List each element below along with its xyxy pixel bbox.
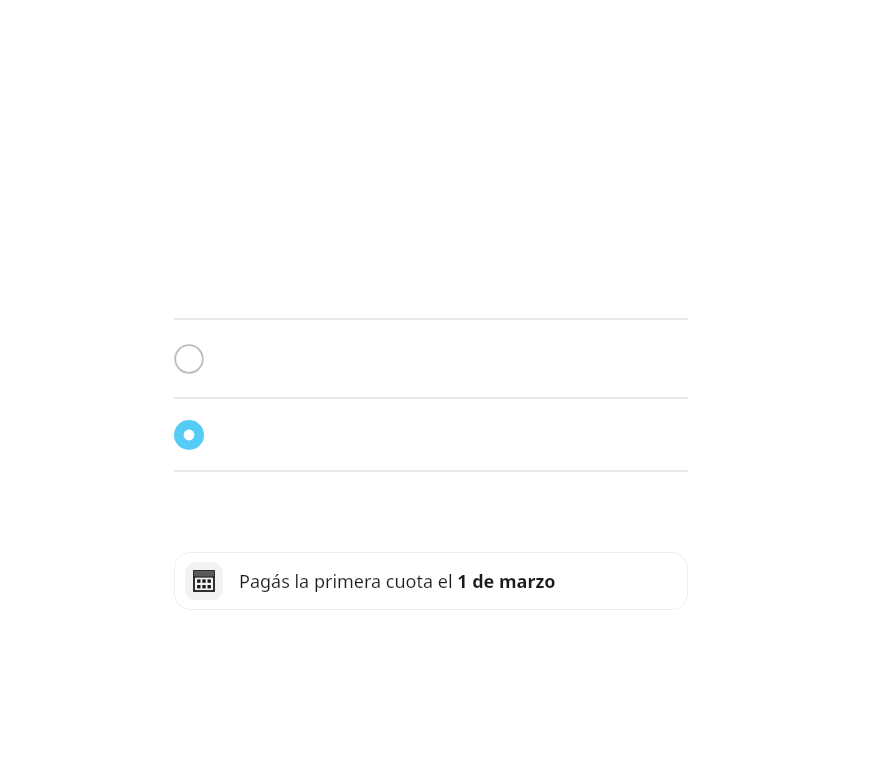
other: Opción seleccionada [174, 420, 204, 450]
staticText: Pagás la primera cuota el 1 de marzo [239, 569, 556, 594]
button[interactable]: Pagás la primera cuota el 1 de marzo [174, 552, 688, 610]
button[interactable]: Opción seleccionada [174, 399, 688, 470]
other: Opción no seleccionada [174, 344, 204, 374]
button[interactable]: Opción no seleccionada [174, 320, 688, 397]
